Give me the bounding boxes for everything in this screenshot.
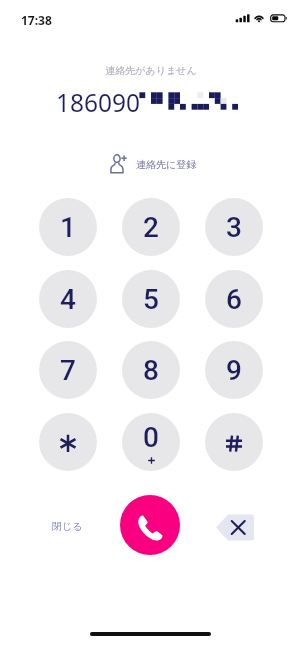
staticText: 6	[226, 283, 242, 316]
button[interactable]: 4	[39, 270, 97, 328]
button[interactable]: 2	[122, 198, 180, 256]
staticText: 1	[60, 211, 76, 244]
button[interactable]: 6	[205, 270, 263, 328]
staticText: 7	[60, 354, 76, 387]
staticText: 0	[143, 421, 159, 454]
staticText: 4	[60, 283, 76, 316]
staticText: 186090	[56, 86, 141, 119]
button[interactable]	[205, 413, 263, 471]
button[interactable]: 連絡先に登録	[105, 149, 200, 178]
button[interactable]: 0	[122, 413, 180, 471]
staticText: 5	[143, 283, 159, 316]
button[interactable]: Call	[120, 495, 180, 555]
staticText: 2	[143, 211, 159, 244]
staticText: 8	[143, 354, 159, 387]
button[interactable]: 9	[205, 341, 263, 399]
button[interactable]: 1	[39, 198, 97, 256]
button[interactable]: Backspace	[216, 513, 254, 542]
button[interactable]: 3	[205, 198, 263, 256]
staticText: 17:38	[21, 12, 52, 28]
staticText: 連絡先に登録	[136, 158, 197, 171]
staticText: 連絡先がありません	[105, 64, 197, 77]
button[interactable]	[39, 413, 97, 471]
staticText: 閉じる	[52, 520, 83, 533]
staticText: 3	[226, 211, 242, 244]
staticText: 9	[226, 354, 242, 387]
button[interactable]: 5	[122, 270, 180, 328]
button[interactable]: 閉じる	[40, 512, 94, 540]
button[interactable]: 7	[39, 341, 97, 399]
button[interactable]: 8	[122, 341, 180, 399]
